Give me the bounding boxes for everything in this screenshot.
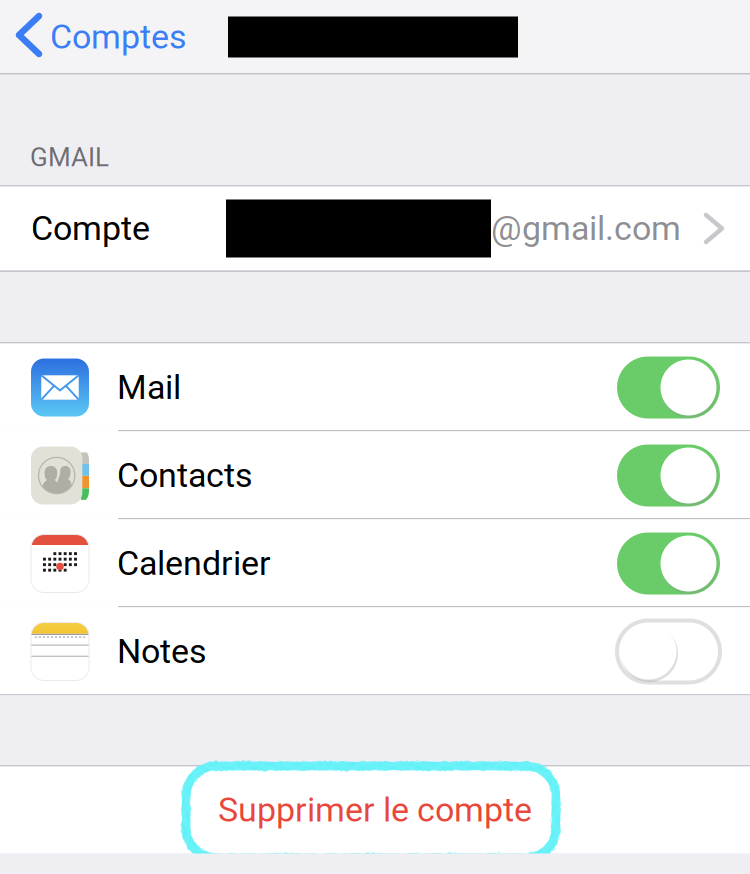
staticText: Compte (31, 209, 150, 248)
staticText: Supprimer le compte (218, 790, 532, 830)
staticText: Contacts (117, 456, 253, 495)
button[interactable]: Contacts (0, 431, 750, 519)
staticText: Mail (117, 368, 181, 407)
staticText: Notes (117, 632, 207, 671)
button[interactable]: Compte (0, 186, 750, 270)
button[interactable]: Mail (0, 343, 750, 431)
button[interactable]: Calendrier (0, 519, 750, 607)
button[interactable]: Notes (0, 607, 750, 695)
staticText: Comptes (50, 17, 187, 57)
staticText: Calendrier (117, 544, 271, 583)
button[interactable]: Comptes (0, 0, 199, 74)
staticText: @gmail.com (491, 209, 681, 248)
staticText: GMAIL (30, 142, 109, 172)
button[interactable]: Supprimer le compte (0, 766, 750, 853)
